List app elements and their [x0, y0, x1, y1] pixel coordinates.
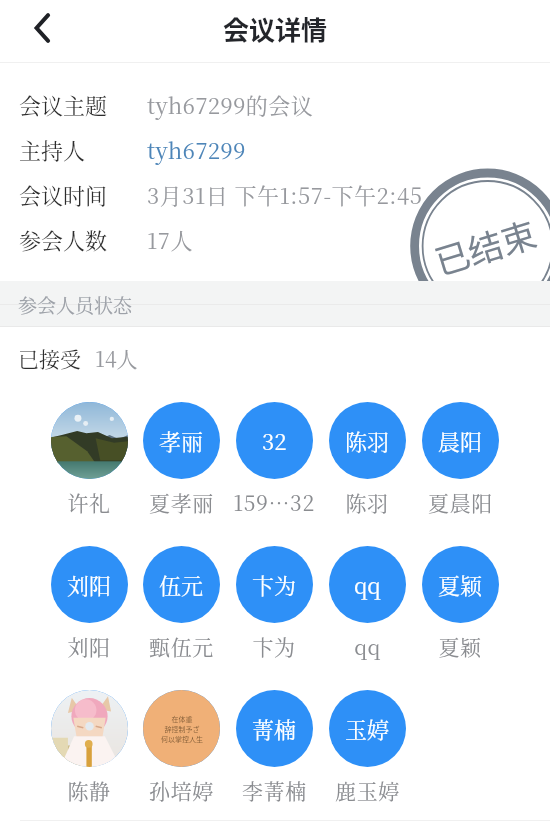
- staticText: 17人: [147, 224, 193, 256]
- staticText: 卞为: [252, 569, 297, 601]
- staticText: 玉婷: [345, 713, 390, 745]
- staticText: 参会人员状态: [18, 291, 133, 318]
- staticText: 3月31日 下午1:57-下午2:45: [147, 179, 423, 211]
- staticText: 鹿玉婷: [335, 775, 400, 805]
- staticText: 孝丽: [159, 425, 204, 457]
- staticText: 李菁楠: [242, 775, 307, 805]
- staticText: 刘阳: [67, 569, 112, 601]
- button[interactable]: 晨阳: [414, 402, 506, 517]
- staticText: 参会人数: [19, 224, 108, 256]
- staticText: 已接受: [18, 343, 81, 373]
- staticText: tyh67299: [147, 134, 246, 166]
- button[interactable]: 陈静: [43, 690, 135, 805]
- staticText: 在体重 辞控制予ざ 何以掌控人生: [161, 714, 203, 744]
- button[interactable]: 伍元: [135, 546, 227, 661]
- staticText: 卞为: [252, 631, 296, 661]
- button[interactable]: 32: [228, 402, 320, 517]
- staticText: 主持人: [19, 134, 86, 166]
- staticText: qq: [354, 631, 381, 661]
- staticText: 孙培婷: [149, 775, 214, 805]
- staticText: 32: [262, 425, 287, 457]
- button[interactable]: 在体重 辞控制予ざ 何以掌控人生: [135, 690, 227, 805]
- staticText: 已结束: [428, 207, 542, 285]
- staticText: 刘阳: [67, 631, 111, 661]
- staticText: 陈羽: [345, 425, 390, 457]
- staticText: 159…32: [233, 487, 315, 517]
- button[interactable]: 菁楠: [228, 690, 320, 805]
- button[interactable]: 夏颖: [414, 546, 506, 661]
- staticText: 甄伍元: [149, 631, 214, 661]
- staticText: 会议时间: [19, 179, 108, 211]
- button[interactable]: 许礼: [43, 402, 135, 517]
- staticText: 夏颖: [438, 631, 482, 661]
- button[interactable]: 刘阳: [43, 546, 135, 661]
- staticText: 菁楠: [252, 713, 297, 745]
- button[interactable]: 孝丽: [135, 402, 227, 517]
- staticText: 许礼: [67, 487, 111, 517]
- button[interactable]: Back: [16, 2, 68, 54]
- button[interactable]: 陈羽: [321, 402, 413, 517]
- button[interactable]: qq: [321, 546, 413, 661]
- staticText: 会议主题: [19, 89, 108, 121]
- staticText: 陈羽: [345, 487, 389, 517]
- button[interactable]: 卞为: [228, 546, 320, 661]
- staticText: 夏晨阳: [428, 487, 493, 517]
- staticText: 14人: [95, 343, 138, 373]
- staticText: 陈静: [67, 775, 111, 805]
- staticText: 夏颖: [438, 569, 483, 601]
- staticText: 晨阳: [438, 425, 483, 457]
- staticText: 会议详情: [0, 10, 550, 48]
- staticText: tyh67299的会议: [147, 89, 314, 121]
- staticText: 伍元: [159, 569, 204, 601]
- staticText: qq: [354, 569, 381, 601]
- staticText: 夏孝丽: [149, 487, 214, 517]
- button[interactable]: 玉婷: [321, 690, 413, 805]
